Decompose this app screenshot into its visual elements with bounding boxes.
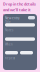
button[interactable]	[5, 51, 18, 54]
staticText: Drop in the details	[3, 1, 36, 7]
staticText: When	[5, 43, 13, 46]
button[interactable]	[5, 23, 35, 27]
staticText: Repeat	[5, 56, 15, 60]
button[interactable]	[5, 37, 35, 41]
staticText: and we'll take it	[3, 7, 31, 12]
staticText: New entry	[5, 16, 19, 20]
button[interactable]	[28, 16, 35, 19]
staticText: Notes	[5, 28, 13, 32]
staticText: Title	[5, 20, 11, 24]
button[interactable]	[20, 51, 33, 54]
staticText: from here.	[3, 13, 22, 18]
